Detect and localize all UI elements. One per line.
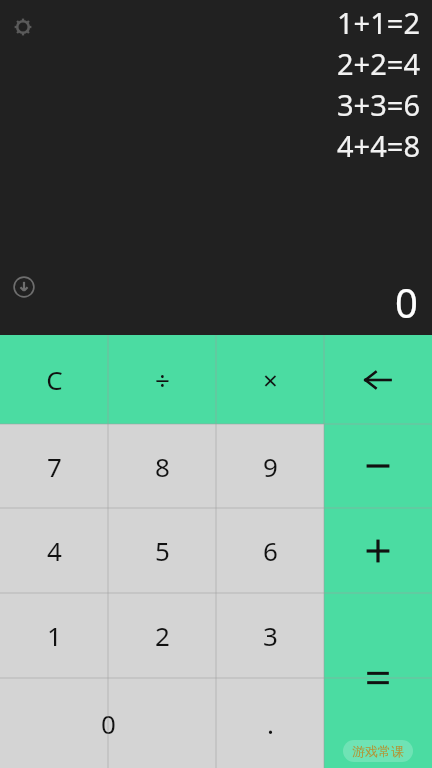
button[interactable]: × <box>216 335 324 424</box>
button[interactable]: ÷ <box>108 335 216 424</box>
staticText: 1+1=2 <box>337 3 420 42</box>
staticText: 4 <box>47 533 62 568</box>
staticText: 3 <box>263 618 278 653</box>
button[interactable]: 2 <box>108 593 216 678</box>
button[interactable]: Minus <box>324 424 432 508</box>
staticText: 4+4=8 <box>337 126 420 165</box>
button[interactable]: 1 <box>0 593 108 678</box>
staticText: 1 <box>47 618 62 653</box>
staticText: 9 <box>263 449 278 484</box>
staticText: . <box>267 706 274 741</box>
button[interactable]: 5 <box>108 508 216 593</box>
button[interactable]: 6 <box>216 508 324 593</box>
staticText: 0 <box>101 706 116 741</box>
button[interactable]: Settings <box>8 12 38 42</box>
staticText: 2 <box>155 618 170 653</box>
button[interactable]: 0 <box>0 678 216 768</box>
staticText: 2+2=4 <box>337 44 420 83</box>
staticText: × <box>263 362 278 397</box>
button[interactable]: 9 <box>216 424 324 508</box>
button[interactable]: Equals <box>324 593 432 768</box>
staticText: C <box>46 362 63 397</box>
staticText: ÷ <box>155 362 170 397</box>
button[interactable]: 7 <box>0 424 108 508</box>
button[interactable]: C <box>0 335 108 424</box>
staticText: 3+3=6 <box>337 85 420 124</box>
staticText: 8 <box>155 449 170 484</box>
staticText: 游戏常课 <box>352 743 404 759</box>
staticText: 6 <box>263 533 278 568</box>
button[interactable]: . <box>216 678 324 768</box>
button[interactable]: 3 <box>216 593 324 678</box>
button[interactable]: 4 <box>0 508 108 593</box>
staticText: 5 <box>155 533 170 568</box>
button[interactable]: Expand history <box>10 273 38 301</box>
button[interactable]: Backspace <box>324 335 432 424</box>
staticText: 7 <box>47 449 62 484</box>
button[interactable]: Plus <box>324 508 432 593</box>
button[interactable]: 8 <box>108 424 216 508</box>
staticText: 0 <box>395 275 418 329</box>
